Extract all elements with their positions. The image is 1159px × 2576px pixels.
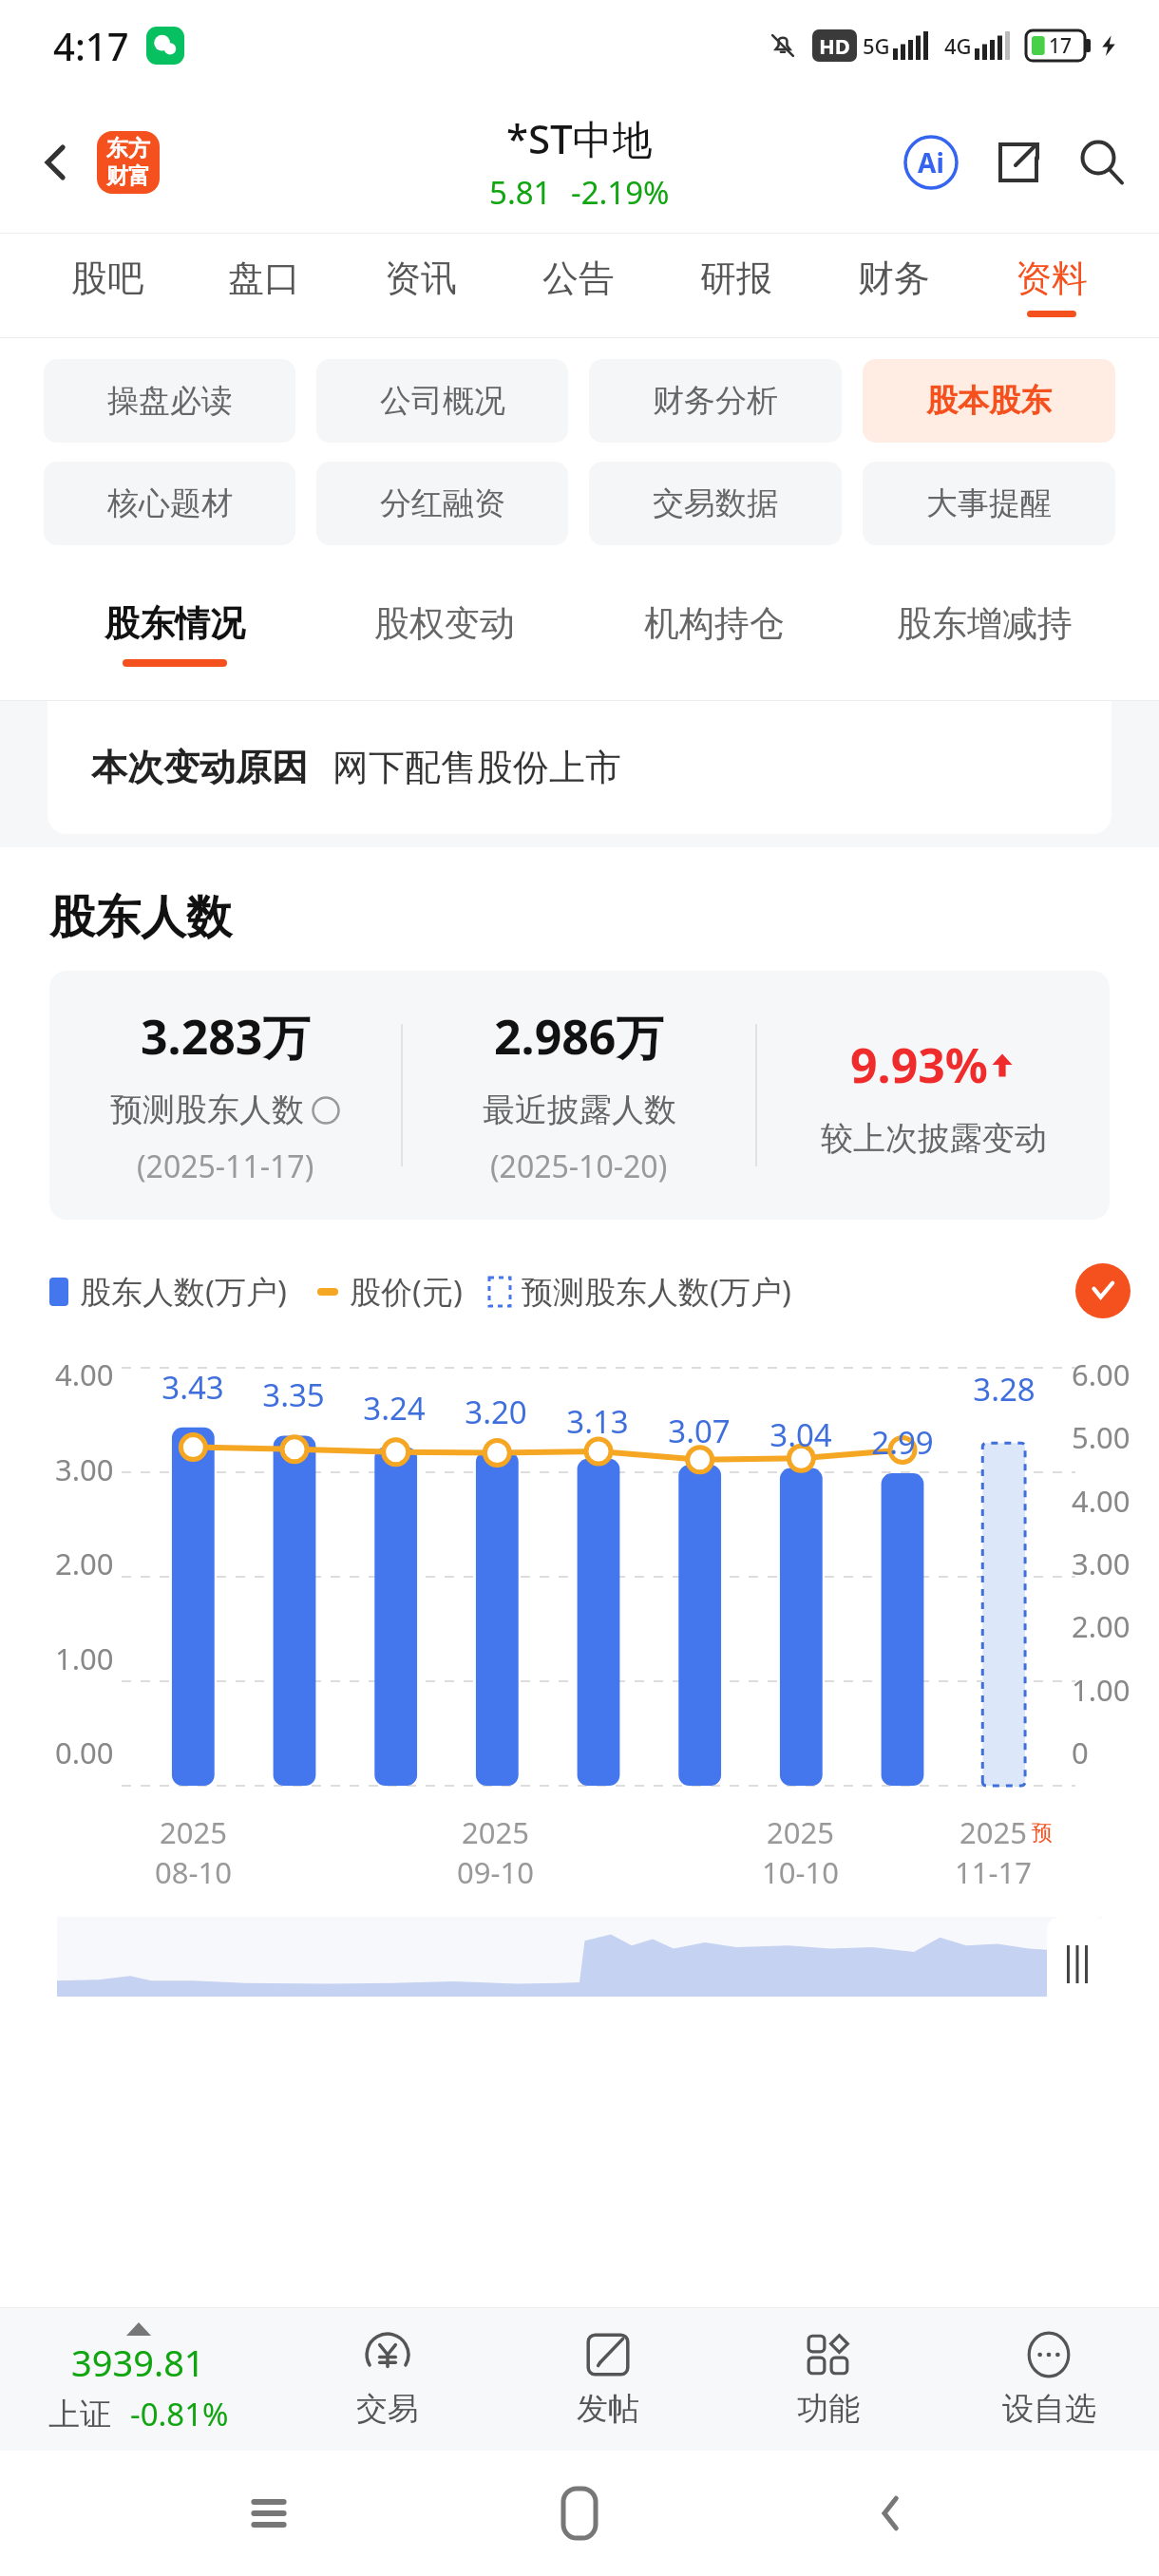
staticText: 2.00 bbox=[1072, 1606, 1130, 1646]
button[interactable]: 财务分析 bbox=[589, 359, 842, 443]
staticText: 3.24 bbox=[363, 1387, 426, 1430]
button[interactable]: 股东人数(万户) bbox=[49, 1270, 287, 1313]
staticText: 股吧 bbox=[71, 256, 143, 301]
button[interactable]: 操盘必读 bbox=[44, 359, 295, 443]
button[interactable]: 分红融资 bbox=[316, 462, 568, 545]
staticText: 3.13 bbox=[566, 1400, 629, 1443]
button[interactable]: 大事提醒 bbox=[863, 462, 1115, 545]
staticText: 2.986万 bbox=[494, 1004, 664, 1069]
staticText: 2025 10-10 bbox=[762, 1812, 839, 1892]
staticText: 财务分析 bbox=[653, 381, 778, 421]
staticText: Ai bbox=[918, 144, 944, 180]
staticText: 盘口 bbox=[228, 256, 300, 301]
button[interactable]: 本次变动原因 bbox=[47, 701, 1111, 834]
button[interactable] bbox=[57, 1917, 1102, 1997]
staticText: 2.99 bbox=[871, 1421, 934, 1464]
button[interactable]: 2.986万 bbox=[403, 1004, 755, 1187]
staticText: 股价(元) bbox=[350, 1270, 463, 1313]
staticText: 3.00 bbox=[55, 1449, 114, 1489]
staticText: HD bbox=[819, 31, 850, 60]
staticText: 股权变动 bbox=[374, 601, 515, 646]
button[interactable]: 资料 bbox=[973, 234, 1130, 338]
staticText: -2.19% bbox=[571, 171, 670, 214]
button[interactable]: 交易数据 bbox=[589, 462, 842, 545]
button[interactable]: 股本股东 bbox=[863, 359, 1115, 443]
button[interactable]: 股价(元) bbox=[317, 1270, 463, 1313]
staticText: 3.20 bbox=[465, 1391, 527, 1433]
button[interactable]: 最近任务 bbox=[226, 2471, 312, 2556]
button[interactable]: 主页 bbox=[537, 2471, 622, 2556]
button[interactable]: 分享 bbox=[982, 126, 1054, 199]
button[interactable]: 收起 bbox=[1075, 1263, 1130, 1318]
button[interactable]: 研报 bbox=[657, 234, 815, 338]
staticText: 2025 08-10 bbox=[155, 1812, 232, 1892]
button[interactable]: 调整范围 bbox=[1047, 1917, 1108, 2012]
staticText: 最近披露人数 bbox=[483, 1089, 676, 1130]
staticText: (2025-11-17) bbox=[137, 1146, 314, 1187]
staticText: 股本股东 bbox=[926, 381, 1052, 421]
staticText: 3.43 bbox=[161, 1366, 224, 1409]
staticText: 0 bbox=[1072, 1733, 1089, 1772]
staticText: 交易数据 bbox=[653, 483, 778, 523]
staticText: 2.00 bbox=[55, 1544, 114, 1583]
staticText: 3.28 bbox=[973, 1368, 1035, 1411]
staticText: 4:17 bbox=[53, 20, 129, 71]
staticText: 2025 11-17 bbox=[955, 1812, 1032, 1892]
button[interactable]: 股权变动 bbox=[310, 566, 579, 701]
button[interactable]: 公告 bbox=[500, 234, 657, 338]
button[interactable]: 3939.81 bbox=[0, 2308, 276, 2451]
staticText: 股东人数(万户) bbox=[80, 1270, 287, 1313]
staticText: 6.00 bbox=[1072, 1354, 1130, 1394]
staticText: 3.07 bbox=[668, 1410, 731, 1452]
staticText: 股东情况 bbox=[104, 601, 245, 646]
button[interactable]: 股吧 bbox=[28, 234, 185, 338]
staticText: 研报 bbox=[700, 256, 772, 301]
staticText: 预 bbox=[1032, 1820, 1053, 1847]
staticText: 4.00 bbox=[1072, 1481, 1130, 1521]
button[interactable]: 资讯 bbox=[342, 234, 500, 338]
staticText: 资讯 bbox=[385, 256, 457, 301]
staticText: 财务 bbox=[858, 256, 930, 301]
staticText: -0.81% bbox=[130, 2393, 229, 2435]
staticText: (2025-10-20) bbox=[490, 1146, 668, 1187]
button[interactable]: 股东情况 bbox=[40, 566, 310, 701]
button[interactable]: 股东增减持 bbox=[849, 566, 1119, 701]
button[interactable]: 交易 bbox=[276, 2308, 498, 2451]
staticText: 分红融资 bbox=[380, 483, 505, 523]
staticText: 1.00 bbox=[1072, 1670, 1130, 1710]
button[interactable]: 3.283万 bbox=[49, 1004, 401, 1187]
staticText: 预测股东人数(万户) bbox=[522, 1270, 791, 1313]
button[interactable]: AI助手 bbox=[895, 126, 967, 199]
staticText: 公司概况 bbox=[380, 381, 505, 421]
staticText: 操盘必读 bbox=[107, 381, 233, 421]
staticText: 5G bbox=[863, 31, 890, 60]
button[interactable]: 公司概况 bbox=[316, 359, 568, 443]
button[interactable]: 发帖 bbox=[498, 2308, 718, 2451]
staticText: 1.00 bbox=[55, 1638, 114, 1678]
button[interactable]: 机构持仓 bbox=[579, 566, 849, 701]
staticText: 2025 09-10 bbox=[457, 1812, 534, 1892]
staticText: 发帖 bbox=[577, 2389, 639, 2429]
staticText: 设自选 bbox=[1002, 2389, 1096, 2429]
button[interactable]: 返回 bbox=[21, 127, 91, 198]
staticText: 公告 bbox=[542, 256, 615, 301]
staticText: 交易 bbox=[356, 2389, 419, 2429]
staticText: 资料 bbox=[1016, 256, 1088, 301]
staticText: 0.00 bbox=[55, 1733, 114, 1772]
button[interactable]: 功能 bbox=[718, 2308, 939, 2451]
button[interactable]: 9.93% bbox=[757, 1032, 1110, 1159]
staticText: 3.283万 bbox=[141, 1004, 311, 1069]
button[interactable]: 设自选 bbox=[939, 2308, 1159, 2451]
button[interactable]: 盘口 bbox=[185, 234, 342, 338]
button[interactable]: 搜索 bbox=[1066, 126, 1138, 199]
button[interactable]: 预测股东人数(万户) bbox=[489, 1270, 791, 1313]
staticText: 上证 bbox=[48, 2395, 111, 2434]
staticText: 财富 bbox=[106, 162, 150, 190]
button[interactable]: 东方财富 bbox=[97, 131, 160, 194]
staticText: 股东人数 bbox=[49, 889, 232, 946]
button[interactable]: 核心题材 bbox=[44, 462, 295, 545]
button[interactable]: 返回 bbox=[848, 2471, 934, 2556]
button[interactable]: 财务 bbox=[815, 234, 973, 338]
staticText: *ST中地 bbox=[506, 111, 653, 165]
staticText: 3939.81 bbox=[71, 2338, 205, 2387]
